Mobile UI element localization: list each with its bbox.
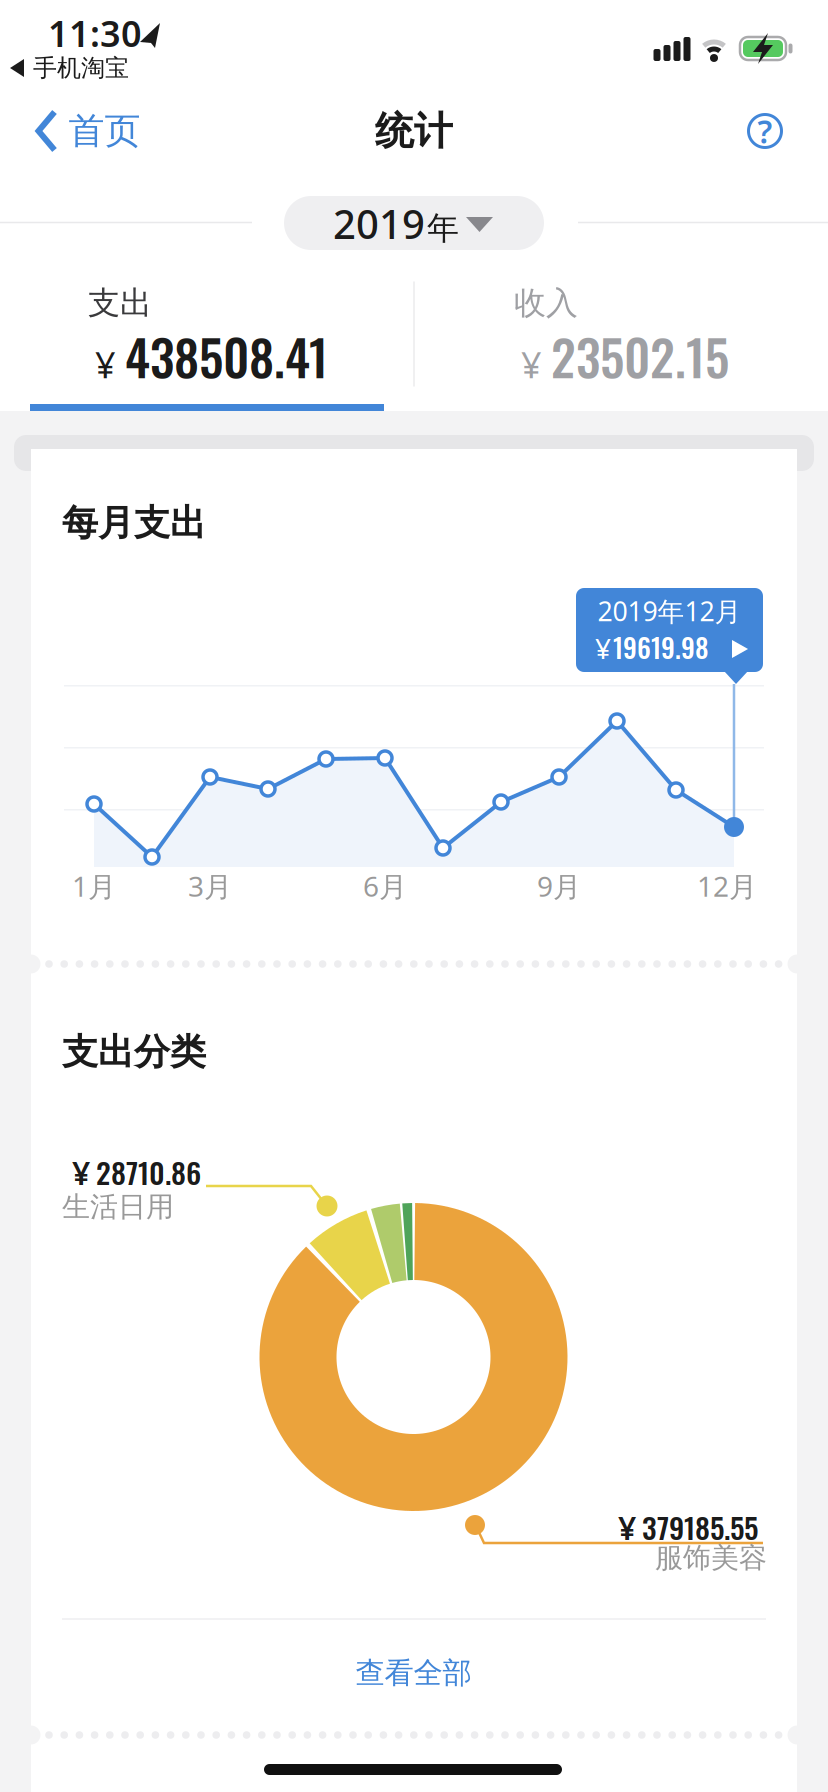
staticText: 手机淘宝 xyxy=(33,53,129,83)
staticText: ¥ xyxy=(595,630,611,667)
staticText: 统计 xyxy=(375,107,453,155)
staticText: 收入 xyxy=(514,283,578,323)
staticText: 9月 xyxy=(537,867,581,905)
button[interactable]: 查看全部 xyxy=(303,1643,523,1703)
button[interactable]: ? xyxy=(743,109,787,153)
staticText: 首页 xyxy=(68,109,140,153)
staticText: 服饰美容 xyxy=(655,1541,767,1575)
staticText: 28710.86 xyxy=(96,1150,201,1194)
staticText: 查看全部 xyxy=(355,1655,471,1691)
staticText: 23502.15 xyxy=(551,319,729,392)
button[interactable]: 收入 xyxy=(414,270,828,410)
staticText: ? xyxy=(757,110,772,152)
staticText: ¥ xyxy=(521,340,551,388)
staticText: 2019年12月 xyxy=(597,593,741,629)
staticText: 11:30 xyxy=(48,9,142,57)
staticText: 每月支出 xyxy=(62,501,206,545)
staticText: 12月 xyxy=(697,867,757,905)
button[interactable]: 首页 xyxy=(32,108,147,154)
staticText: 1月 xyxy=(72,867,116,905)
staticText: 支出分类 xyxy=(62,1030,206,1074)
staticText: 支出 xyxy=(88,283,152,323)
staticText: 生活日用 xyxy=(62,1190,174,1224)
staticText: 19619.98 xyxy=(613,627,709,667)
staticText: ¥ xyxy=(95,340,125,388)
staticText: 年 xyxy=(427,209,459,248)
button[interactable]: 支出 xyxy=(0,270,414,410)
staticText: ¥ xyxy=(72,1151,90,1194)
staticText: 6月 xyxy=(363,867,407,905)
staticText: 3月 xyxy=(188,867,232,905)
staticText: 379185.55 xyxy=(642,1505,758,1549)
button[interactable]: 2019 xyxy=(284,196,544,250)
staticText: 438508.41 xyxy=(125,319,328,392)
button[interactable]: 2019年12月 xyxy=(576,588,763,684)
staticText: ¥ xyxy=(618,1506,636,1549)
staticText: 2019 xyxy=(333,197,425,250)
